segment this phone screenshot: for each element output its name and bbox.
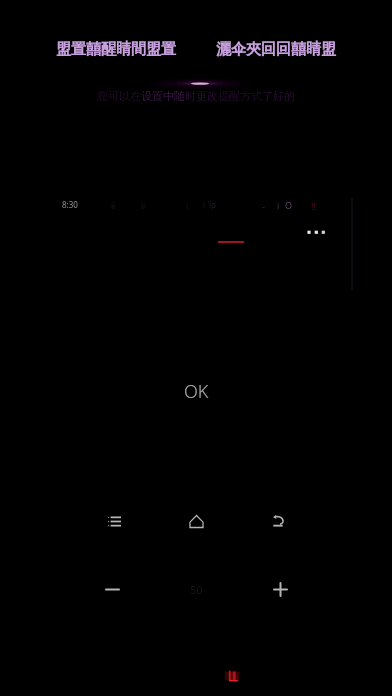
staticText: ii: [111, 200, 116, 211]
staticText: 设置中随: [141, 89, 185, 103]
staticText: 了好的: [262, 89, 295, 103]
staticText: 灑伞夾回回囍睛盟: [216, 40, 336, 59]
staticText: -: [262, 200, 265, 212]
button[interactable]: More options: [303, 225, 329, 239]
staticText: 盟置囍醒睛間盟置: [56, 40, 176, 59]
button[interactable]: Recents: [99, 506, 129, 536]
button[interactable]: OK: [170, 373, 223, 410]
staticText: ii: [141, 200, 146, 211]
staticText: i: [277, 199, 280, 211]
button[interactable]: Decrease: [97, 574, 127, 604]
button[interactable]: Back: [263, 506, 293, 536]
button[interactable]: 50: [181, 574, 211, 604]
staticText: i 'ip: [203, 199, 216, 210]
button[interactable]: Record: [225, 670, 239, 682]
staticText: 时更改: [185, 89, 218, 103]
staticText: !!: [311, 200, 316, 212]
staticText: 50: [190, 582, 203, 597]
staticText: 8:30: [62, 199, 78, 210]
button[interactable]: Increase: [265, 574, 295, 604]
button[interactable]: Home: [181, 506, 211, 536]
staticText: 您可以在: [97, 89, 141, 103]
staticText: 提醒方式: [218, 89, 262, 103]
staticText: i: [186, 200, 189, 211]
staticText: O: [285, 199, 293, 211]
staticText: OK: [184, 379, 209, 404]
